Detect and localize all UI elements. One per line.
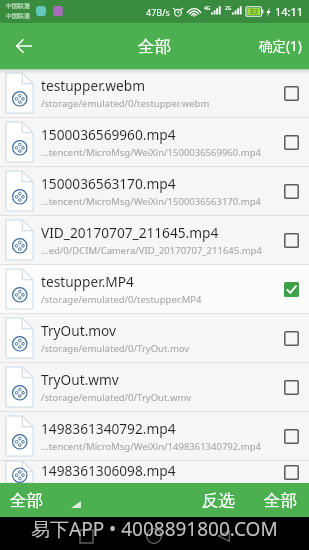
staticText: 14:11 (275, 4, 304, 19)
button[interactable]: testupper.webm (0, 69, 309, 117)
button[interactable]: Select file (280, 220, 302, 260)
staticText: /storage/emulated/0/TryOut.wmv (41, 391, 192, 404)
staticText: 易下APP • 4008891800.COM (31, 516, 278, 542)
button[interactable]: Select file (280, 171, 302, 211)
button[interactable]: Recents (70, 520, 102, 550)
staticText: 中国联通 (6, 12, 30, 20)
staticText: 47B/s (146, 6, 170, 18)
button[interactable]: VID_20170707_211645.mp4 (0, 216, 309, 264)
staticText: TryOut.wmv (41, 370, 119, 389)
button[interactable]: TryOut.mov (0, 314, 309, 362)
staticText: TryOut.mov (41, 321, 117, 340)
button[interactable]: Select file (280, 269, 302, 309)
button[interactable]: 1498361306098.mp4 (0, 461, 309, 483)
staticText: ...tencent/MicroMsg/WeiXin/1500036563170… (41, 195, 261, 208)
button[interactable]: Select file (280, 73, 302, 113)
button[interactable]: 1500036569960.mp4 (0, 118, 309, 166)
staticText: ...tencent/MicroMsg/WeiXin/1498361340792… (41, 440, 261, 453)
button[interactable]: 反选 (193, 483, 244, 517)
staticText: 83 (250, 7, 259, 17)
staticText: 1500036569960.mp4 (41, 125, 176, 144)
button[interactable]: Select file (280, 318, 302, 358)
staticText: testupper.MP4 (41, 272, 134, 291)
button[interactable]: Back (0, 23, 48, 69)
staticText: 全部 (10, 490, 43, 511)
staticText: 中国联通 (6, 2, 30, 10)
staticText: 确定(1) (259, 37, 302, 55)
button[interactable]: TryOut.wmv (0, 363, 309, 411)
button[interactable]: Select file (280, 461, 302, 483)
button[interactable]: Select file (280, 122, 302, 162)
button[interactable]: 1498361340792.mp4 (0, 412, 309, 460)
staticText: /storage/emulated/0/TryOut.mov (41, 342, 190, 355)
staticText: /storage/emulated/0/testupper.MP4 (41, 293, 202, 306)
staticText: 反选 (202, 490, 235, 511)
button[interactable]: 全部 (244, 483, 309, 517)
staticText: /storage/emulated/0/testupper.webm (41, 97, 210, 110)
staticText: 全部 (264, 490, 297, 511)
staticText: 4G (204, 5, 211, 12)
button[interactable]: 1500036563170.mp4 (0, 167, 309, 215)
button[interactable]: Back (208, 520, 240, 550)
button[interactable]: Home (138, 520, 170, 550)
staticText: 2G (225, 5, 232, 12)
staticText: 1498361306098.mp4 (41, 461, 176, 480)
button[interactable]: 确定(1) (247, 23, 309, 69)
staticText: ...ed/0/DCIM/Camera/VID_20170707_211645.… (41, 244, 262, 257)
staticText: 全部 (138, 36, 171, 57)
button[interactable]: Select file (280, 416, 302, 456)
button[interactable]: testupper.MP4 (0, 265, 309, 313)
staticText: 1500036563170.mp4 (41, 174, 176, 193)
staticText: testupper.webm (41, 76, 145, 95)
button[interactable]: 全部 (0, 483, 89, 517)
staticText: ...tencent/MicroMsg/WeiXin/1500036569960… (41, 146, 261, 159)
button[interactable]: Select file (280, 367, 302, 407)
staticText: 1498361340792.mp4 (41, 419, 176, 438)
staticText: VID_20170707_211645.mp4 (41, 223, 219, 242)
